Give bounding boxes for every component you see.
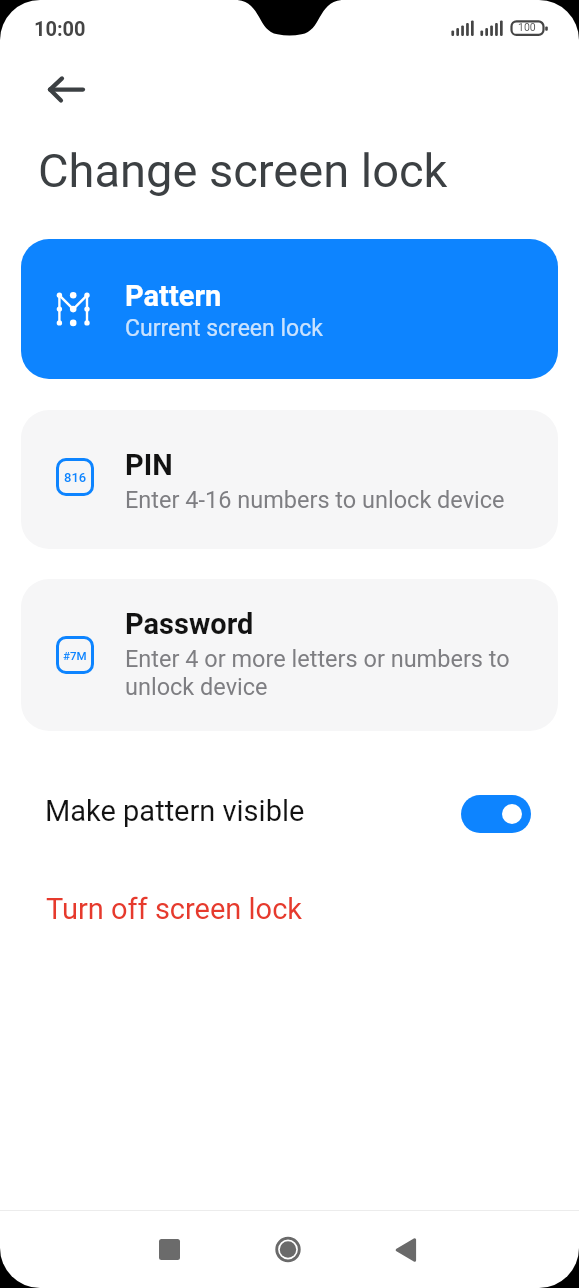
staticText: PIN — [125, 448, 173, 482]
staticText: 816 — [64, 470, 87, 485]
button[interactable]: Pattern — [21, 239, 558, 379]
button[interactable] — [266, 1227, 310, 1271]
staticText: Change screen lock — [38, 143, 448, 198]
staticText: 10:00 — [34, 17, 86, 40]
staticText: Enter 4-16 numbers to unlock device — [125, 486, 505, 514]
staticText: Pattern — [125, 279, 222, 313]
button[interactable]: #7M — [21, 579, 558, 731]
staticText: Password — [125, 607, 254, 641]
staticText: 100 — [518, 21, 536, 33]
staticText: Current screen lock — [125, 315, 323, 342]
button[interactable] — [147, 1227, 191, 1271]
button[interactable] — [385, 1228, 429, 1272]
button[interactable]: 816 — [21, 410, 558, 549]
staticText: Enter 4 or more letters or numbers to un… — [125, 645, 510, 701]
staticText: Make pattern visible — [45, 794, 305, 828]
button[interactable]: Turn off screen lock — [46, 892, 303, 926]
button[interactable] — [461, 795, 531, 833]
button[interactable] — [38, 62, 90, 114]
staticText: #7M — [63, 649, 87, 662]
